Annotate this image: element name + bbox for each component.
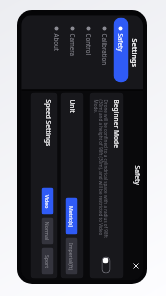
button[interactable]: Calibration bbox=[97, 17, 112, 82]
button[interactable]: About bbox=[49, 17, 64, 82]
button[interactable]: Close bbox=[129, 259, 142, 272]
staticText: Speed Settings bbox=[43, 99, 52, 146]
staticText: Normal bbox=[43, 221, 50, 240]
button[interactable]: Unit bbox=[60, 92, 83, 278]
button[interactable]: Metric(s) bbox=[65, 197, 77, 234]
button[interactable]: Sport bbox=[41, 247, 53, 274]
staticText: Imperial(ft) bbox=[67, 242, 74, 270]
staticText: Settings bbox=[129, 38, 139, 67]
button[interactable]: Imperial(ft) bbox=[65, 237, 77, 274]
staticText: Safety bbox=[132, 165, 141, 185]
staticText: Calibration bbox=[100, 33, 108, 65]
button[interactable]: Beginner Mode bbox=[89, 92, 123, 278]
staticText: Beginner Mode bbox=[111, 99, 120, 148]
button[interactable]: Beginner Mode toggle bbox=[101, 256, 110, 273]
button[interactable]: Safety bbox=[113, 17, 128, 82]
staticText: Camera bbox=[68, 33, 76, 56]
staticText: Drone will be confined to a cylindrical … bbox=[91, 99, 108, 247]
button[interactable]: Speed Settings bbox=[30, 92, 57, 278]
button[interactable]: Video bbox=[41, 187, 53, 214]
button[interactable]: Control bbox=[81, 17, 96, 82]
staticText: Unit bbox=[67, 99, 76, 113]
button[interactable]: Camera bbox=[65, 17, 80, 82]
staticText: About bbox=[52, 33, 60, 51]
staticText: Safety bbox=[116, 33, 124, 51]
staticText: Video bbox=[43, 194, 50, 208]
button[interactable]: Normal bbox=[41, 217, 53, 244]
staticText: Control bbox=[84, 33, 92, 55]
staticText: Sport bbox=[43, 254, 50, 268]
staticText: Metric(s) bbox=[67, 205, 74, 227]
